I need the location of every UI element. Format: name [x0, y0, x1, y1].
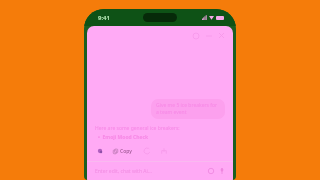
button[interactable]: Copy — [111, 147, 134, 156]
button[interactable]: Share — [159, 146, 169, 156]
staticText: Enter edit, chat with Ai... — [95, 168, 152, 175]
button[interactable]: Enter edit, chat with Ai... — [87, 162, 233, 180]
staticText: 9:41 — [98, 14, 110, 22]
staticText: Here are some general ice breakers: — [95, 125, 180, 132]
other: Attach — [208, 168, 214, 174]
staticText: Give me 5 ice breakers for a team event — [156, 102, 220, 116]
staticText: • Emoji Mood Check — [98, 134, 149, 141]
button[interactable]: Model — [95, 146, 105, 156]
other: Voice — [219, 168, 225, 174]
button[interactable]: Close — [217, 31, 226, 40]
button[interactable]: History — [191, 31, 200, 40]
staticText: Copy — [120, 148, 132, 155]
button[interactable]: Give me 5 ice breakers for a team event — [151, 99, 225, 119]
button[interactable]: Regenerate — [142, 146, 152, 156]
